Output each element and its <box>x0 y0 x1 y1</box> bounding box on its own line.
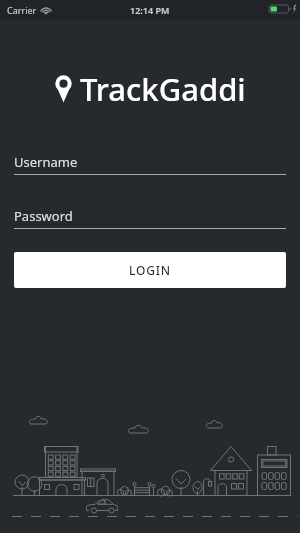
staticText: LOGIN <box>129 262 171 278</box>
button[interactable]: Password <box>14 207 286 229</box>
staticText: Carrier <box>7 4 37 16</box>
staticText: TrackGaddi <box>80 68 246 110</box>
button[interactable]: LOGIN <box>14 252 286 288</box>
staticText: 12:14 PM <box>130 4 170 16</box>
staticText: Username <box>14 153 78 171</box>
staticText: Password <box>14 207 73 225</box>
button[interactable]: Username <box>14 153 286 175</box>
